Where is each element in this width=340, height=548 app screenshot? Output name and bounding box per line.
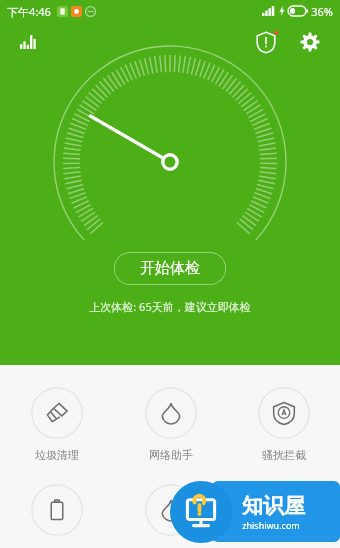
- staticText: 36%: [311, 4, 333, 19]
- button[interactable]: 骚扰拦截: [227, 385, 340, 464]
- button[interactable]: 垃圾清理: [0, 385, 114, 464]
- button[interactable]: Security status: [246, 22, 286, 62]
- button[interactable]: Statistics: [10, 24, 46, 60]
- staticText: 下午4:46: [7, 4, 51, 19]
- staticText: 开始体检: [140, 259, 200, 278]
- button[interactable]: [114, 482, 227, 538]
- button[interactable]: 网络助手: [114, 385, 227, 464]
- staticText: 垃圾清理: [35, 448, 79, 462]
- button[interactable]: [0, 482, 114, 538]
- staticText: 骚扰拦截: [262, 448, 306, 462]
- button[interactable]: 开始体检: [114, 252, 226, 285]
- staticText: 上次体检: 65天前，建议立即体检: [89, 299, 251, 314]
- button[interactable]: Settings: [290, 22, 330, 62]
- staticText: 知识屋: [242, 493, 305, 519]
- staticText: zhishiwu.com: [242, 519, 300, 531]
- staticText: 网络助手: [149, 448, 193, 462]
- button[interactable]: [227, 482, 340, 538]
